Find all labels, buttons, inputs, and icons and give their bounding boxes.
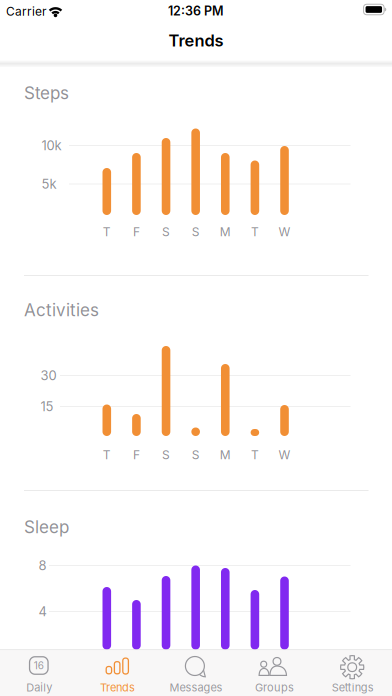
- staticText: Sleep: [24, 517, 69, 537]
- button[interactable]: Groups: [235, 649, 314, 696]
- staticText: F: [133, 448, 140, 462]
- staticText: 15: [40, 399, 53, 414]
- staticText: S: [162, 225, 170, 239]
- staticText: M: [220, 448, 231, 462]
- staticText: S: [192, 225, 200, 239]
- staticText: Daily: [26, 681, 52, 694]
- staticText: Trends: [168, 30, 223, 50]
- staticText: 16: [34, 660, 44, 672]
- staticText: Activities: [24, 300, 99, 320]
- button[interactable]: 16: [0, 649, 78, 696]
- staticText: 10k: [41, 138, 61, 153]
- staticText: 5k: [41, 176, 56, 192]
- staticText: Steps: [24, 83, 69, 103]
- staticText: T: [103, 448, 111, 462]
- staticText: Groups: [255, 681, 294, 694]
- staticText: Carrier: [6, 4, 47, 19]
- staticText: W: [278, 225, 290, 239]
- staticText: 8: [38, 558, 46, 573]
- staticText: S: [192, 448, 200, 462]
- staticText: 12:36 PM: [168, 3, 224, 18]
- staticText: Trends: [100, 681, 135, 694]
- staticText: 4: [38, 604, 46, 619]
- staticText: T: [103, 225, 111, 239]
- staticText: F: [133, 225, 140, 239]
- staticText: T: [251, 448, 259, 462]
- staticText: T: [251, 225, 259, 239]
- button[interactable]: Messages: [157, 649, 235, 696]
- staticText: Messages: [169, 681, 222, 694]
- staticText: 30: [40, 368, 56, 383]
- button[interactable]: Trends: [78, 649, 157, 696]
- staticText: S: [162, 448, 170, 462]
- staticText: W: [278, 448, 290, 462]
- button[interactable]: Settings: [314, 649, 392, 696]
- staticText: Settings: [332, 681, 374, 694]
- staticText: M: [220, 225, 231, 239]
